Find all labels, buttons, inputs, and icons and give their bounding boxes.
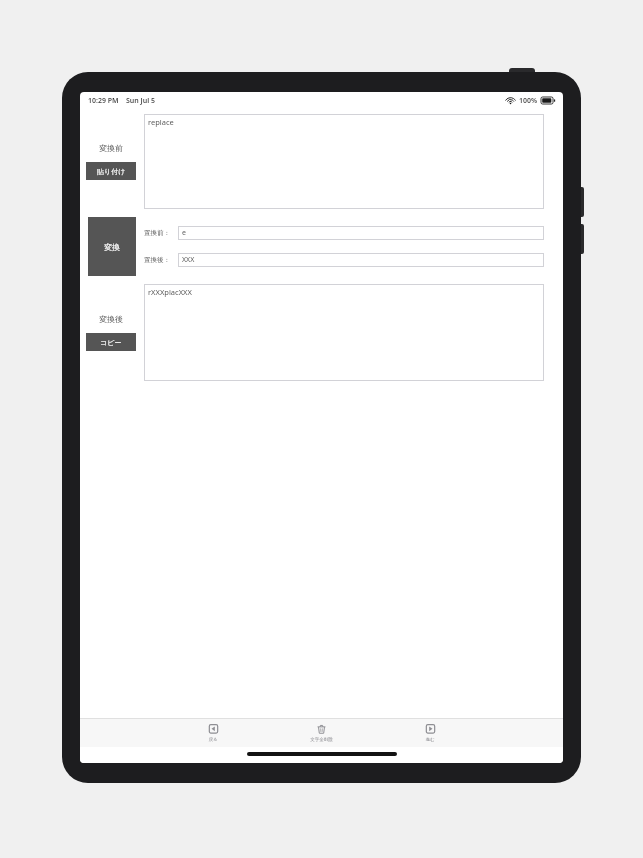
staticText: 変換前 bbox=[99, 143, 123, 153]
button[interactable]: 変換 bbox=[88, 217, 136, 276]
staticText: replace bbox=[148, 117, 174, 127]
staticText: 置換前： bbox=[144, 229, 170, 237]
button[interactable]: Forward bbox=[407, 719, 453, 747]
staticText: 10:29 PM bbox=[88, 96, 119, 106]
staticText: 戻る bbox=[208, 737, 218, 743]
staticText: XXX bbox=[182, 255, 195, 265]
button[interactable]: replace bbox=[144, 114, 544, 209]
staticText: 100% bbox=[519, 96, 538, 106]
staticText: e bbox=[182, 228, 186, 238]
button[interactable]: Delete all text bbox=[298, 719, 344, 747]
button[interactable]: rXXXplacXXX bbox=[144, 284, 544, 381]
button[interactable]: 貼り付け bbox=[86, 162, 136, 180]
button[interactable]: コピー bbox=[86, 333, 136, 351]
staticText: コピー bbox=[100, 338, 122, 347]
staticText: 貼り付け bbox=[97, 167, 126, 176]
staticText: rXXXplacXXX bbox=[148, 287, 192, 297]
button[interactable]: XXX bbox=[178, 253, 544, 267]
button[interactable]: Back bbox=[190, 719, 236, 747]
staticText: 変換 bbox=[104, 242, 120, 252]
staticText: 置換後： bbox=[144, 256, 170, 264]
staticText: 変換後 bbox=[99, 314, 123, 324]
staticText: 文字全削除 bbox=[310, 737, 333, 743]
staticText: Sun Jul 5 bbox=[126, 96, 156, 106]
button[interactable]: e bbox=[178, 226, 544, 240]
staticText: 進む bbox=[425, 737, 435, 743]
